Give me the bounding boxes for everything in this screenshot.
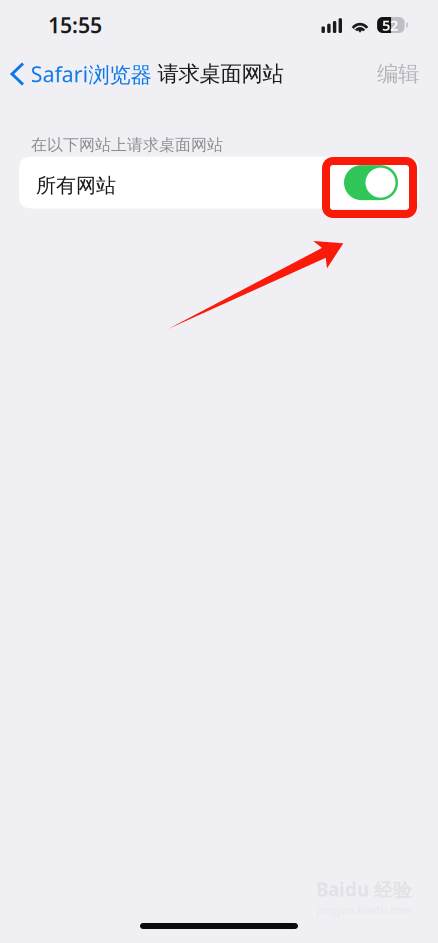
staticText: 15:55 — [48, 11, 102, 39]
staticText: 在以下网站上请求桌面网站 — [31, 135, 223, 155]
staticText: Safari浏览器 — [30, 60, 151, 88]
staticText: 52 — [382, 15, 398, 35]
staticText: Baidu 经验 — [316, 877, 412, 902]
staticText: 编辑 — [377, 61, 419, 87]
button[interactable]: 所有网站 — [19, 157, 419, 209]
staticText: 所有网站 — [36, 173, 116, 198]
button[interactable]: 返回 Safari浏览器 — [0, 52, 153, 96]
staticText: 请求桌面网站 — [157, 61, 283, 87]
button[interactable]: 编辑 — [363, 52, 438, 96]
